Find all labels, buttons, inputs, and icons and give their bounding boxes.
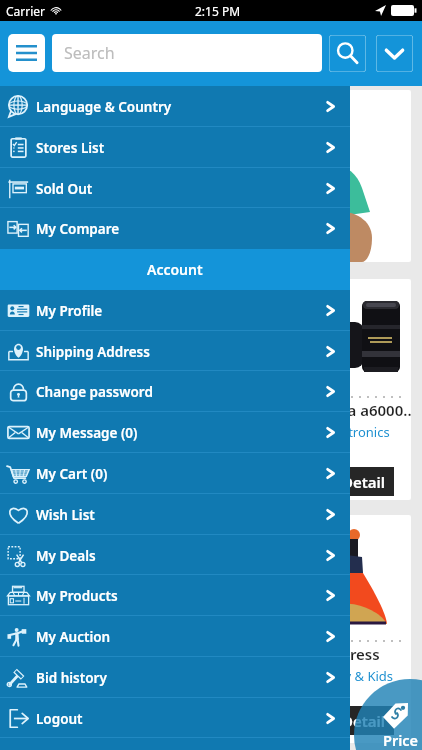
button[interactable]: Search: [329, 35, 366, 72]
staticText: Language & Country: [36, 98, 172, 116]
staticText: Electronics: [324, 423, 390, 441]
button[interactable]: Shipping Address: [0, 331, 350, 372]
button[interactable]: Expand: [376, 35, 413, 72]
button[interactable]: Change password: [0, 371, 350, 412]
staticText: Carrier: [6, 3, 46, 19]
staticText: My Message (0): [36, 424, 138, 442]
button[interactable]: Logout: [0, 698, 350, 739]
staticText: Stores List: [36, 139, 105, 157]
button[interactable]: My Deals: [0, 535, 350, 576]
button[interactable]: My Cart (0): [0, 453, 350, 494]
staticText: Change password: [36, 383, 153, 401]
staticText: My Auction: [36, 628, 111, 646]
button[interactable]: My Profile: [0, 290, 350, 331]
button[interactable]: Price: [354, 679, 422, 750]
staticText: My Profile: [36, 302, 103, 320]
button[interactable]: My Compare: [0, 208, 350, 249]
staticText: My Deals: [36, 547, 96, 565]
staticText: Account: [147, 260, 203, 279]
staticText: Wish List: [36, 506, 95, 524]
button[interactable]: Detail: [334, 706, 394, 735]
staticText: Shipping Address: [36, 343, 150, 361]
staticText: Sold Out: [36, 180, 93, 198]
staticText: Baby & Kids: [321, 667, 394, 685]
staticText: Detail: [342, 711, 386, 731]
staticText: Sony Alpha a6000...: [275, 400, 411, 420]
button[interactable]: Account: [0, 249, 350, 290]
staticText: My Compare: [36, 220, 120, 238]
button[interactable]: Wish List: [0, 494, 350, 535]
staticText: Logout: [36, 710, 83, 728]
button[interactable]: My Message (0): [0, 412, 350, 453]
button[interactable]: My Products: [0, 575, 350, 616]
staticText: 2:15 PM: [195, 3, 241, 19]
staticText: My Products: [36, 587, 118, 605]
button[interactable]: Search: [52, 34, 322, 72]
staticText: Detail: [342, 472, 386, 492]
staticText: Bid history: [36, 669, 107, 687]
button[interactable]: Detail: [334, 467, 394, 496]
staticText: Price: [383, 730, 419, 750]
button[interactable]: Sold Out: [0, 168, 350, 209]
button[interactable]: Language & Country: [0, 86, 350, 127]
staticText: My Cart (0): [36, 465, 108, 483]
button[interactable]: Stores List: [0, 127, 350, 168]
button[interactable]: My Auction: [0, 616, 350, 657]
button[interactable]: Bid history: [0, 657, 350, 698]
staticText: Search: [64, 42, 115, 64]
staticText: Girls Party Dress: [259, 644, 380, 664]
button[interactable]: Menu: [8, 34, 45, 72]
